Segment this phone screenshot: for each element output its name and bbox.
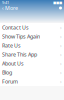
button[interactable]: ‹ More xyxy=(2,4,18,12)
staticText: Blog xyxy=(2,69,12,76)
staticText: Forum xyxy=(2,78,18,85)
button[interactable]: Blog xyxy=(0,68,64,77)
staticText: › xyxy=(60,24,62,31)
staticText: › xyxy=(60,33,62,40)
button[interactable]: Show Tips Again xyxy=(0,32,64,41)
staticText: › xyxy=(60,69,62,76)
button[interactable]: Forum xyxy=(0,77,64,86)
button[interactable]: Contact Us xyxy=(0,23,64,32)
button[interactable]: Share This App xyxy=(0,50,64,59)
button[interactable]: About Us xyxy=(0,59,64,68)
staticText: Share This App xyxy=(2,51,37,58)
staticText: About Us xyxy=(2,60,24,67)
staticText: Rate Us xyxy=(2,42,21,49)
staticText: ‹ More xyxy=(2,4,18,12)
button[interactable]: Rate Us xyxy=(0,41,64,50)
staticText: › xyxy=(60,60,62,67)
staticText: ◼◼◼ xyxy=(53,0,62,5)
staticText: › xyxy=(60,78,62,85)
staticText: › xyxy=(60,51,62,58)
staticText: › xyxy=(60,42,62,49)
staticText: 9:41 xyxy=(2,0,9,5)
button[interactable]: Search xyxy=(59,6,62,9)
staticText: Show Tips Again xyxy=(2,33,40,40)
staticText: Contact Us xyxy=(2,24,29,31)
